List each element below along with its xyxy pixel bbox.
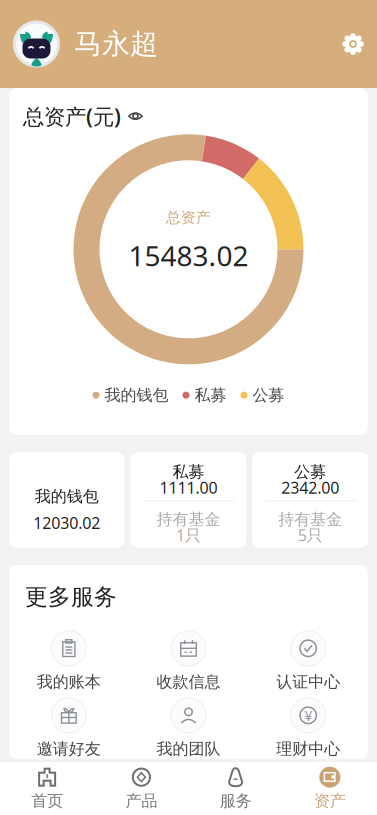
staticText: 我的钱包 bbox=[35, 486, 99, 506]
staticText: 认证中心 bbox=[276, 672, 340, 692]
staticText: 我的钱包 bbox=[104, 385, 168, 405]
button[interactable]: 公募 bbox=[252, 452, 368, 548]
staticText: 持有基金 bbox=[156, 510, 220, 529]
staticText: 12030.02 bbox=[33, 512, 100, 533]
staticText: ¥ bbox=[304, 706, 312, 725]
button[interactable]: 认证中心 bbox=[248, 631, 368, 690]
staticText: 公募 bbox=[252, 385, 284, 405]
staticText: 首页 bbox=[31, 791, 63, 811]
staticText: 1111.00 bbox=[159, 477, 217, 498]
button[interactable]: 资产 bbox=[283, 760, 377, 815]
button[interactable]: 邀请好友 bbox=[9, 698, 129, 757]
staticText: 15483.02 bbox=[128, 237, 248, 274]
staticText: 理财中心 bbox=[276, 739, 340, 759]
staticText: 总资产(元) bbox=[23, 102, 121, 130]
button[interactable]: 私募 bbox=[131, 452, 246, 548]
staticText: 更多服务 bbox=[25, 583, 117, 611]
staticText: 公募 bbox=[294, 462, 326, 482]
button[interactable]: 产品 bbox=[94, 760, 188, 815]
staticText: 马永超 bbox=[74, 27, 158, 61]
button[interactable]: 首页 bbox=[0, 760, 94, 815]
staticText: 我的账本 bbox=[37, 672, 101, 692]
staticText: 我的团队 bbox=[156, 739, 220, 759]
staticText: 私募 bbox=[172, 462, 204, 482]
button[interactable]: 收款信息 bbox=[129, 631, 248, 690]
staticText: 收款信息 bbox=[156, 672, 220, 692]
staticText: 5只 bbox=[298, 524, 323, 546]
staticText: 2342.00 bbox=[281, 477, 339, 498]
staticText: 总资产 bbox=[166, 209, 211, 227]
staticText: 资产 bbox=[314, 791, 346, 811]
button[interactable]: 显示金额 bbox=[128, 110, 143, 123]
button[interactable]: 设置 bbox=[342, 33, 364, 55]
staticText: 产品 bbox=[125, 791, 157, 811]
button[interactable]: ¥ bbox=[248, 698, 368, 757]
button[interactable]: 我的钱包 bbox=[9, 452, 125, 548]
button[interactable]: 服务 bbox=[188, 760, 283, 815]
staticText: 私募 bbox=[194, 385, 226, 405]
staticText: 1只 bbox=[176, 524, 201, 546]
button[interactable]: 我的账本 bbox=[9, 631, 129, 690]
staticText: 邀请好友 bbox=[37, 739, 101, 759]
staticText: 服务 bbox=[220, 791, 252, 811]
staticText: 持有基金 bbox=[278, 510, 342, 529]
button[interactable]: 我的团队 bbox=[129, 698, 248, 757]
